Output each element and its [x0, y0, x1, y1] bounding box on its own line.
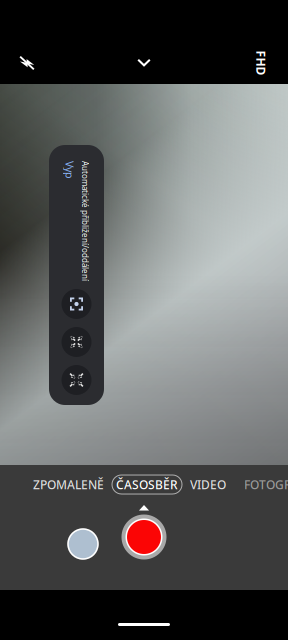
button[interactable]: Gallery [68, 529, 98, 559]
button[interactable]: Resolution FHD [239, 42, 283, 84]
button[interactable]: Auto zoom tracking [61, 289, 91, 319]
button[interactable]: Flash off [5, 42, 49, 84]
button[interactable]: Zoom out [61, 365, 91, 395]
staticText: FOTOGR [244, 476, 288, 492]
button[interactable]: ZPOMALENĚ [33, 475, 104, 494]
staticText: VIDEO [190, 476, 226, 492]
staticText: Automatické přibližení/oddálení [16, 207, 136, 218]
button[interactable]: Record [121, 514, 166, 559]
button[interactable]: FOTOGR [244, 475, 288, 494]
button[interactable]: More settings [122, 42, 166, 84]
staticText: FHD [248, 55, 273, 71]
button[interactable]: VIDEO [190, 475, 226, 494]
staticText: ČASOSBĚR [116, 476, 178, 492]
button[interactable]: ČASOSBĚR [112, 475, 182, 494]
button[interactable]: Zoom in [61, 327, 91, 357]
staticText: ZPOMALENĚ [33, 476, 104, 492]
